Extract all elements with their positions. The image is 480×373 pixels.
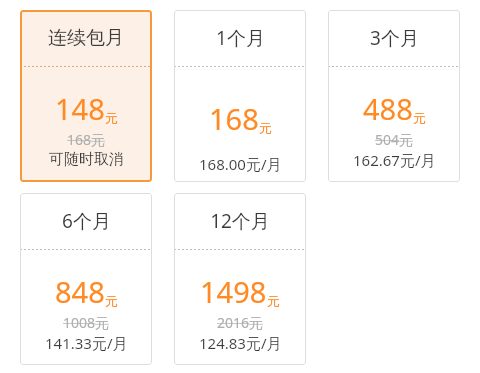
staticText: 2016元 <box>217 313 264 332</box>
staticText: 168 <box>209 99 259 138</box>
staticText: 848 <box>55 272 105 311</box>
staticText: 504元 <box>375 130 414 149</box>
staticText: 124.83元/月 <box>199 333 282 353</box>
staticText: 元 <box>105 110 118 126</box>
staticText: 1008元 <box>63 313 110 332</box>
staticText: 6个月 <box>62 208 111 234</box>
button[interactable]: 12个月 <box>174 193 306 365</box>
staticText: 162.67元/月 <box>353 150 436 170</box>
staticText: 元 <box>413 110 426 126</box>
staticText: 3个月 <box>370 25 419 51</box>
staticText: 168.00元/月 <box>199 154 282 174</box>
staticText: 12个月 <box>210 208 270 234</box>
staticText: 148 <box>55 89 105 128</box>
staticText: 元 <box>105 293 118 309</box>
staticText: 488 <box>363 89 413 128</box>
staticText: 连续包月 <box>48 26 124 50</box>
button[interactable]: 1个月 <box>174 10 306 182</box>
staticText: 可随时取消 <box>49 150 124 169</box>
staticText: 1个月 <box>216 25 265 51</box>
staticText: 元 <box>267 293 280 309</box>
staticText: 141.33元/月 <box>45 333 128 353</box>
staticText: 1498 <box>200 272 267 311</box>
staticText: 元 <box>259 120 272 136</box>
button[interactable]: 3个月 <box>328 10 460 182</box>
button[interactable]: 6个月 <box>20 193 152 365</box>
button[interactable]: 连续包月 <box>20 10 152 182</box>
staticText: 168元 <box>67 130 106 149</box>
